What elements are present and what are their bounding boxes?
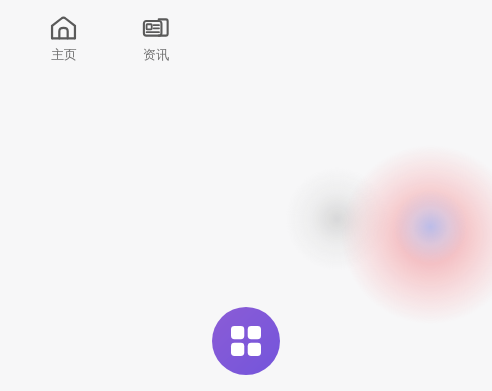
button[interactable]: 资讯 [110, 14, 200, 80]
button[interactable]: 应用 [212, 307, 280, 375]
staticText: 资讯 [143, 46, 169, 62]
button[interactable]: 主页 [18, 14, 108, 80]
staticText: 主页 [51, 46, 77, 62]
